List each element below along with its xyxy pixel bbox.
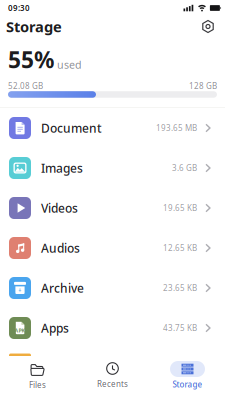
staticText: 23.65 KB bbox=[163, 283, 197, 293]
staticText: 12.65 KB bbox=[163, 243, 197, 253]
button[interactable]: Storage bbox=[150, 356, 225, 400]
button[interactable]: Archive bbox=[0, 268, 225, 308]
staticText: 43.75 KB bbox=[163, 323, 197, 333]
staticText: 52.08 GB bbox=[8, 81, 43, 91]
staticText: used bbox=[57, 57, 82, 72]
staticText: Apps bbox=[41, 320, 69, 336]
staticText: Document bbox=[41, 120, 102, 136]
staticText: APK bbox=[14, 327, 25, 334]
button[interactable]: Images bbox=[0, 148, 225, 188]
button[interactable]: Files bbox=[0, 356, 75, 400]
staticText: 128 GB bbox=[189, 81, 217, 91]
staticText: Videos bbox=[41, 200, 78, 216]
button[interactable]: Recents bbox=[75, 356, 150, 400]
staticText: Recents bbox=[97, 378, 128, 389]
staticText: Storage bbox=[172, 379, 202, 390]
staticText: 3.6 GB bbox=[172, 163, 197, 173]
staticText: Storage bbox=[6, 17, 62, 36]
staticText: 193.65 MB bbox=[156, 123, 197, 133]
button[interactable]: Audios bbox=[0, 228, 225, 268]
button[interactable]: Document bbox=[0, 108, 225, 148]
staticText: Archive bbox=[41, 280, 84, 296]
staticText: 55% bbox=[8, 44, 54, 75]
button[interactable]: APK bbox=[0, 308, 225, 348]
button[interactable]: Settings bbox=[201, 21, 215, 35]
staticText: Files bbox=[29, 379, 46, 390]
button[interactable]: Videos bbox=[0, 188, 225, 228]
staticText: Audios bbox=[41, 240, 80, 256]
staticText: 19.65 KB bbox=[163, 203, 197, 213]
staticText: 09:30 bbox=[8, 3, 30, 13]
staticText: Images bbox=[41, 160, 83, 176]
